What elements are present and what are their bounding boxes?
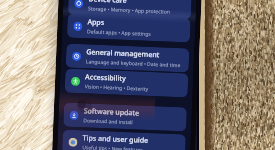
button[interactable]: Accessibility — [65, 68, 188, 97]
staticText: Accessibility — [85, 72, 126, 84]
staticText: Apps — [87, 17, 105, 28]
staticText: Software update — [84, 106, 140, 118]
staticText: Language and keyboard • Date and time — [86, 58, 181, 69]
staticText: Storage • Memory • App protection — [88, 5, 170, 16]
button[interactable]: Tips and user guide — [62, 129, 186, 150]
staticText: Tips and user guide — [82, 133, 149, 146]
button[interactable]: Software update — [63, 102, 187, 131]
staticText: Vision • Hearing • Dexterity — [85, 83, 149, 93]
staticText: General management — [86, 47, 160, 60]
staticText: Useful tips • New features — [82, 144, 143, 150]
button[interactable]: Apps — [67, 13, 191, 43]
staticText: Default apps • App settings — [87, 28, 151, 38]
button[interactable]: General management — [66, 43, 189, 73]
staticText: Download and install — [83, 117, 133, 126]
button[interactable]: Device care — [68, 0, 192, 20]
staticText: Device care — [88, 0, 128, 6]
